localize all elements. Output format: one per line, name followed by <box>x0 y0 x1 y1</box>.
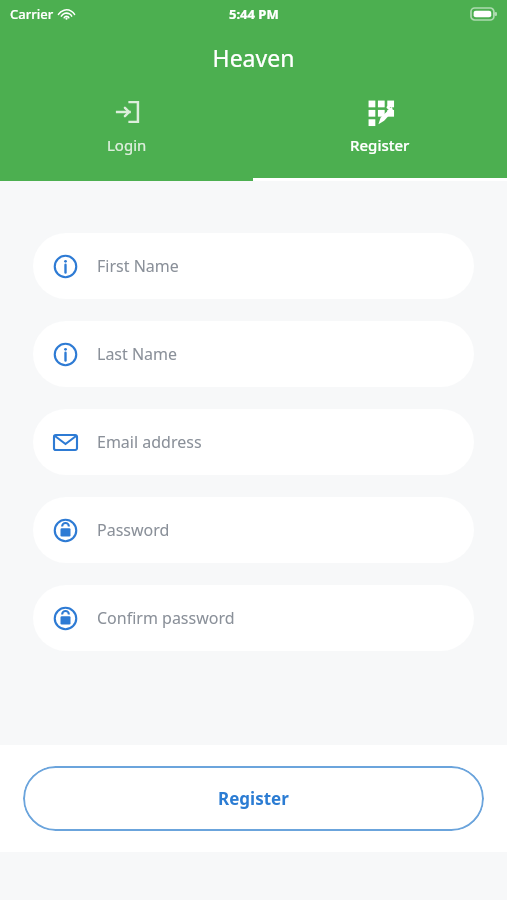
staticText: Last Name <box>97 343 178 365</box>
button[interactable]: Password <box>33 497 474 563</box>
button[interactable]: Register <box>23 766 484 831</box>
staticText: Heaven <box>0 42 507 73</box>
staticText: Register <box>218 787 289 810</box>
staticText: Password <box>97 519 170 541</box>
button[interactable]: Register <box>253 95 507 159</box>
staticText: Register <box>350 135 410 155</box>
button[interactable]: Confirm password <box>33 585 474 651</box>
staticText: First Name <box>97 255 179 277</box>
button[interactable]: Login <box>0 95 253 159</box>
staticText: 5:44 PM <box>229 5 279 23</box>
staticText: Login <box>107 135 147 155</box>
button[interactable]: First Name <box>33 233 474 299</box>
button[interactable]: Email address <box>33 409 474 475</box>
button[interactable]: Last Name <box>33 321 474 387</box>
staticText: Carrier <box>10 5 54 23</box>
staticText: Email address <box>97 431 202 453</box>
staticText: Confirm password <box>97 607 235 629</box>
